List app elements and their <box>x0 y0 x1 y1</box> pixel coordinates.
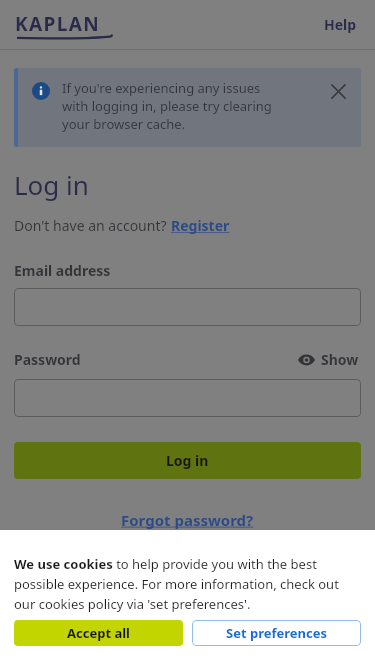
button[interactable]: Email address input <box>14 288 361 326</box>
staticText: Password <box>14 350 81 369</box>
staticText: Email address <box>14 261 111 280</box>
staticText: If you're experiencing any issues <box>62 79 261 97</box>
button[interactable]: Register <box>171 216 230 235</box>
button[interactable]: Close alert <box>323 76 353 106</box>
button[interactable]: Log in <box>14 442 361 479</box>
button[interactable]: Set preferences <box>192 620 361 646</box>
staticText: Log in <box>166 451 209 470</box>
staticText: your browser cache. <box>62 115 186 133</box>
staticText: Help <box>324 15 357 34</box>
staticText: Log in <box>14 167 89 202</box>
staticText: Forgot password? <box>121 510 254 530</box>
staticText: Set preferences <box>226 624 328 642</box>
button[interactable]: Password input <box>14 379 361 417</box>
staticText: Accept all <box>67 624 130 642</box>
button[interactable]: Accept all <box>14 620 183 646</box>
staticText: We use cookies to help provide you with … <box>14 555 361 613</box>
staticText: KAPLAN <box>15 11 101 37</box>
button[interactable]: Help <box>316 9 365 40</box>
staticText: Show <box>321 350 359 369</box>
staticText: Register <box>171 216 230 235</box>
staticText: with logging in, please try clearing <box>62 97 272 115</box>
button[interactable]: Kaplan home <box>15 11 113 39</box>
button[interactable]: Show <box>296 348 361 371</box>
button[interactable]: Forgot password? <box>117 506 258 534</box>
staticText: Don't have an account? <box>14 216 171 235</box>
